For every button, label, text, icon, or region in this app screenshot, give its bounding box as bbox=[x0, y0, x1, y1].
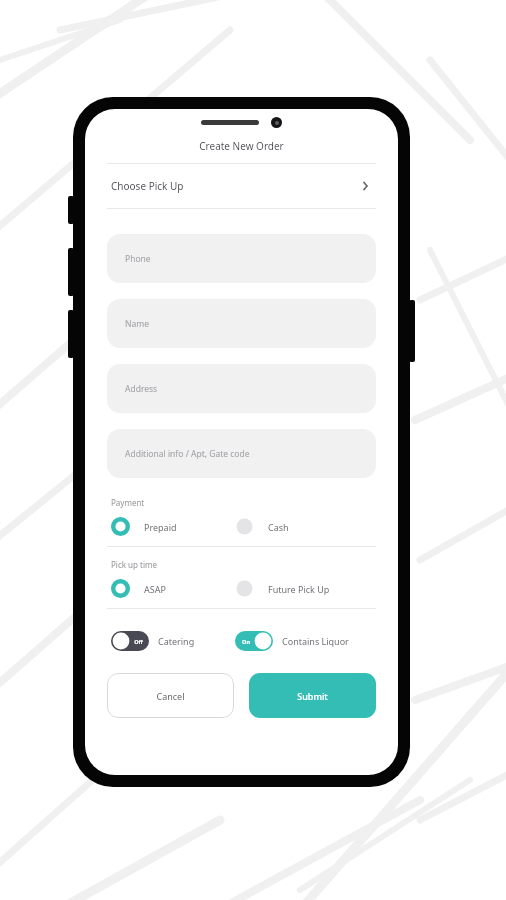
other: On bbox=[235, 631, 273, 651]
other: Off bbox=[111, 631, 149, 651]
button[interactable]: Additional info / Apt, Gate code bbox=[107, 429, 376, 478]
other: Selected option bbox=[111, 579, 130, 598]
staticText: ASAP bbox=[144, 583, 166, 595]
staticText: Submit bbox=[297, 690, 328, 702]
staticText: Cash bbox=[268, 521, 289, 533]
staticText: Additional info / Apt, Gate code bbox=[125, 448, 250, 460]
button[interactable]: Unselected option bbox=[235, 517, 372, 536]
other: Selected option bbox=[111, 517, 130, 536]
staticText: Off bbox=[134, 638, 143, 645]
staticText: On bbox=[242, 638, 250, 645]
staticText: Prepaid bbox=[144, 521, 177, 533]
button[interactable]: Unselected option bbox=[235, 579, 372, 598]
staticText: Pick up time bbox=[111, 559, 157, 570]
staticText: Create New Order bbox=[85, 139, 398, 153]
button[interactable]: Phone bbox=[107, 234, 376, 283]
other: Unselected option bbox=[235, 517, 254, 536]
button[interactable]: Address bbox=[107, 364, 376, 413]
staticText: Cancel bbox=[156, 690, 185, 702]
button[interactable]: Cancel bbox=[107, 673, 234, 718]
staticText: Name bbox=[125, 318, 149, 330]
other: Unselected option bbox=[235, 579, 254, 598]
staticText: Payment bbox=[111, 497, 145, 508]
button[interactable]: Selected option bbox=[111, 517, 235, 536]
button[interactable]: Name bbox=[107, 299, 376, 348]
staticText: Choose Pick Up bbox=[111, 179, 358, 193]
staticText: Address bbox=[125, 383, 158, 395]
staticText: Contains Liquor bbox=[282, 635, 349, 647]
staticText: Phone bbox=[125, 253, 151, 265]
button[interactable]: Choose Pick Up bbox=[85, 164, 398, 208]
button[interactable]: On bbox=[235, 631, 372, 651]
staticText: Future Pick Up bbox=[268, 583, 330, 595]
staticText: Catering bbox=[158, 635, 195, 647]
button[interactable]: Selected option bbox=[111, 579, 235, 598]
button[interactable]: Submit bbox=[249, 673, 376, 718]
button[interactable]: Off bbox=[111, 631, 235, 651]
